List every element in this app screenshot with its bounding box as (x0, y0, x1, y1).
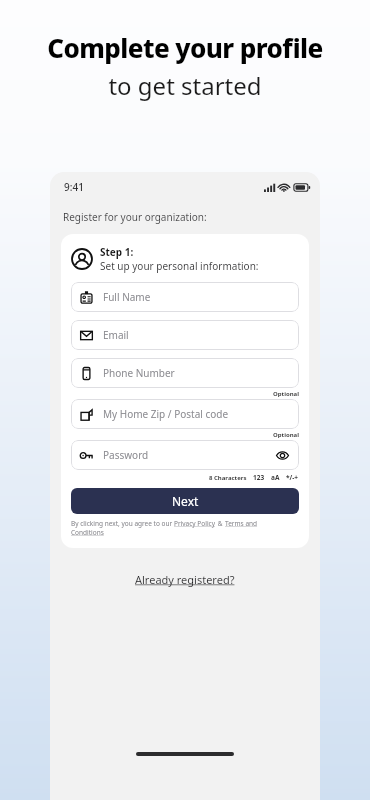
button[interactable]: Password (71, 440, 299, 470)
staticText: 8 Characters (209, 474, 247, 482)
button[interactable]: Privacy Policy (174, 519, 216, 528)
staticText: By clicking next, you agree to our (71, 519, 174, 528)
staticText: 9:41 (64, 180, 84, 194)
staticText: Full Name (103, 290, 151, 304)
staticText: to get started (0, 69, 370, 102)
staticText: Register for your organization: (63, 210, 207, 224)
staticText: Set up your personal information: (100, 259, 259, 273)
staticText: aA (271, 473, 280, 482)
staticText: Optional (273, 431, 299, 439)
staticText: Phone Number (103, 366, 175, 380)
button[interactable]: Already registered? (131, 568, 239, 591)
staticText: Optional (273, 390, 299, 398)
button[interactable]: Full Name (71, 282, 299, 312)
staticText: */-+ (286, 473, 299, 482)
staticText: Password (103, 448, 149, 462)
staticText: Step 1: (100, 245, 134, 259)
staticText: Next (172, 493, 199, 509)
button[interactable]: Conditions (71, 528, 104, 537)
button[interactable]: My Home Zip / Postal code (71, 399, 299, 429)
button[interactable]: Terms and (225, 519, 258, 528)
staticText: Complete your profile (0, 30, 370, 65)
staticText: Email (103, 328, 129, 342)
button[interactable]: Phone Number (71, 358, 299, 388)
staticText: & (216, 519, 225, 528)
button[interactable]: Email (71, 320, 299, 350)
button[interactable]: Show password (274, 447, 290, 463)
staticText: My Home Zip / Postal code (103, 407, 229, 421)
staticText: 123 (253, 473, 265, 482)
button[interactable]: Next (71, 488, 299, 514)
